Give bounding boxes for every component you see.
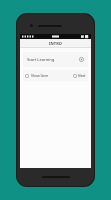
staticText: Start Learning: [27, 57, 79, 62]
button[interactable]: Start Learning: [23, 52, 88, 67]
button[interactable]: Next: [73, 73, 86, 78]
staticText: Next: [78, 73, 86, 78]
button[interactable]: Show Item: [25, 73, 73, 78]
staticText: INTRO: [49, 41, 62, 46]
staticText: Show Item: [31, 73, 49, 78]
other: Settings: [79, 57, 84, 62]
